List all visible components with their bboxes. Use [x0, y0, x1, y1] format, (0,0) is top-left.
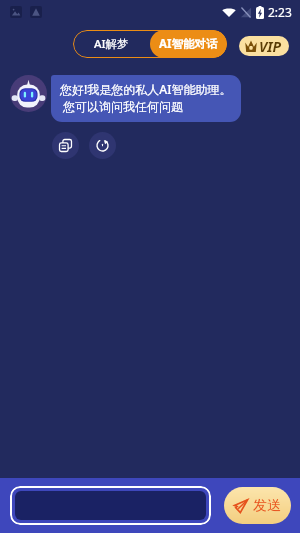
button[interactable]: Regenerate — [89, 132, 116, 159]
button[interactable]: 发送 — [234, 487, 281, 524]
button[interactable]: Copy — [52, 132, 79, 159]
button[interactable] — [15, 491, 206, 520]
staticText: AI解梦 — [94, 36, 129, 52]
staticText: 发送 — [253, 497, 281, 515]
staticText: VIP — [259, 37, 282, 56]
staticText: AI智能对话 — [159, 36, 218, 52]
button[interactable]: AI智能对话 — [150, 30, 227, 58]
staticText: 2:23 — [268, 4, 292, 20]
staticText: 您好!我是您的私人AI智能助理。 您可以询问我任何问题 — [60, 81, 232, 115]
button[interactable]: AI解梦 — [73, 30, 150, 58]
button[interactable]: VIP — [245, 36, 282, 56]
